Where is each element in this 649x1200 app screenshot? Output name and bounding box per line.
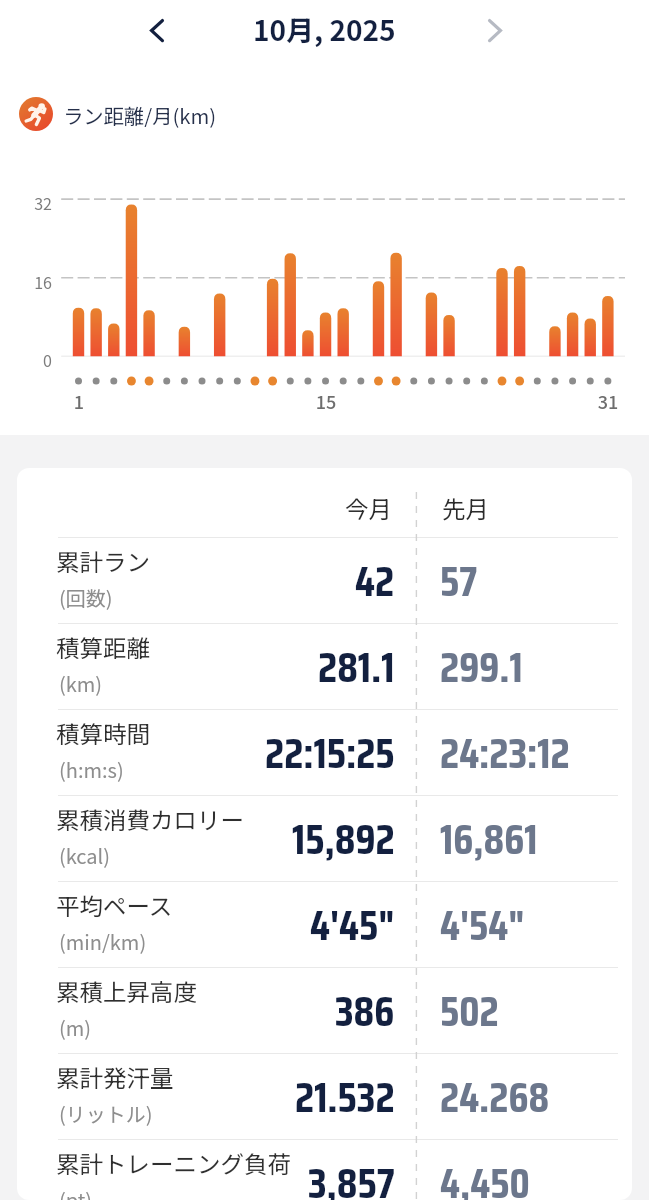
staticText: (m) xyxy=(59,1013,92,1042)
staticText: (km) xyxy=(59,669,103,698)
button[interactable]: Previous month xyxy=(132,5,181,54)
button[interactable]: 累計ラン xyxy=(17,538,632,623)
staticText: 累計ラン xyxy=(56,544,150,578)
staticText: (h:m:s) xyxy=(59,755,124,784)
staticText: 16 xyxy=(12,270,52,293)
staticText: 10月, 2025 xyxy=(253,9,396,50)
staticText: 15,892 xyxy=(292,806,395,873)
staticText: 累計トレーニング負荷 xyxy=(56,1146,291,1180)
staticText: 42 xyxy=(355,548,395,615)
staticText: 今月 xyxy=(345,491,392,525)
button[interactable]: Next month xyxy=(470,5,519,54)
staticText: 16,861 xyxy=(440,806,538,873)
staticText: (pt) xyxy=(59,1185,93,1200)
staticText: 24.268 xyxy=(440,1064,550,1131)
button[interactable]: 積算時間 xyxy=(17,710,632,795)
staticText: 57 xyxy=(440,548,478,615)
button[interactable]: ラン距離/月(km) xyxy=(19,97,217,131)
staticText: 502 xyxy=(440,978,499,1045)
staticText: ラン距離/月(km) xyxy=(63,100,217,129)
staticText: 0 xyxy=(12,348,52,371)
staticText: 積算時間 xyxy=(56,716,150,750)
staticText: 先月 xyxy=(442,491,489,525)
button[interactable]: 累計発汗量 xyxy=(17,1054,632,1139)
button[interactable]: 累積消費カロリー xyxy=(17,796,632,881)
staticText: 4'45" xyxy=(310,892,395,959)
staticText: 累積消費カロリー xyxy=(56,802,244,836)
staticText: 1 xyxy=(59,388,99,414)
button[interactable]: 累計トレーニング負荷 xyxy=(17,1140,632,1200)
button[interactable]: 先月 xyxy=(442,491,489,525)
staticText: 15 xyxy=(306,388,346,414)
staticText: 31 xyxy=(588,388,628,414)
button[interactable]: 積算距離 xyxy=(17,624,632,709)
staticText: 4'54" xyxy=(440,892,525,959)
button[interactable]: 累積上昇高度 xyxy=(17,968,632,1053)
staticText: 386 xyxy=(335,978,395,1045)
staticText: 24:23:12 xyxy=(440,720,570,787)
staticText: 299.1 xyxy=(440,634,523,701)
button[interactable]: 平均ペース xyxy=(17,882,632,967)
staticText: (min/km) xyxy=(59,927,147,956)
staticText: 4,450 xyxy=(440,1150,530,1200)
staticText: 3,857 xyxy=(308,1150,395,1200)
staticText: (リットル) xyxy=(59,1099,153,1128)
staticText: 22:15:25 xyxy=(265,720,395,787)
staticText: 281.1 xyxy=(318,634,395,701)
staticText: 平均ペース xyxy=(56,888,173,922)
staticText: 32 xyxy=(12,191,52,214)
staticText: 21.532 xyxy=(295,1064,395,1131)
staticText: (回数) xyxy=(59,583,113,612)
staticText: 積算距離 xyxy=(56,630,150,664)
button[interactable]: 今月 xyxy=(345,491,392,525)
staticText: 累計発汗量 xyxy=(56,1060,174,1094)
staticText: (kcal) xyxy=(59,841,110,870)
staticText: 累積上昇高度 xyxy=(56,974,197,1008)
